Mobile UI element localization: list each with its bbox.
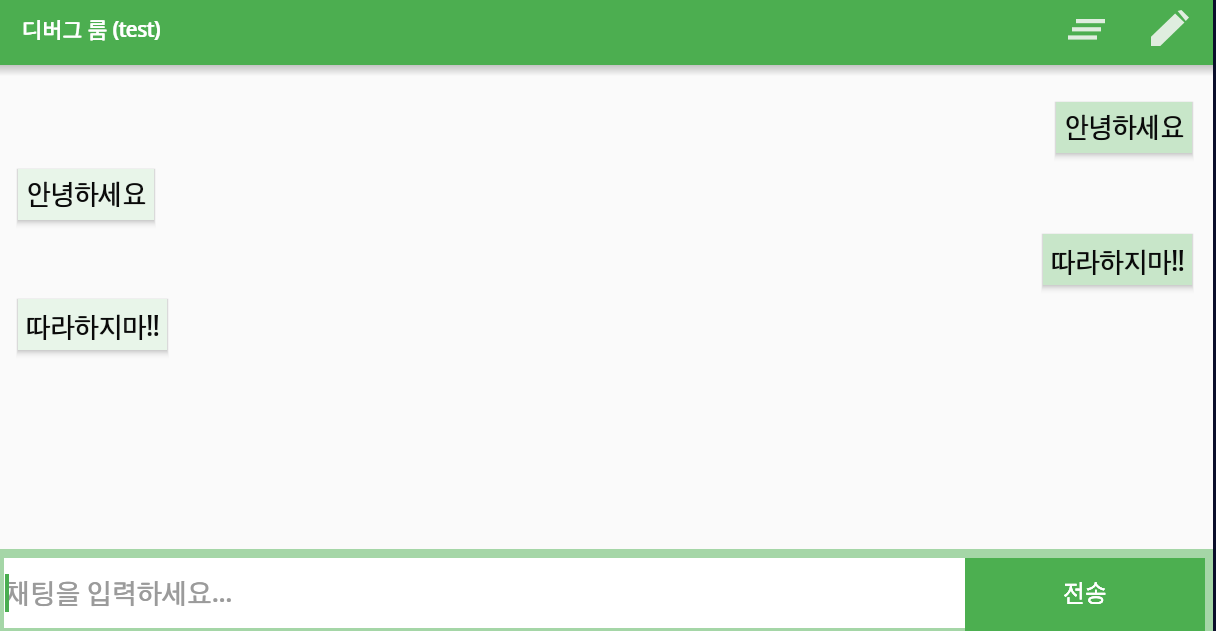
staticText: 채팅을 입력하세요... (6, 572, 233, 610)
button[interactable]: Sort messages (1046, 0, 1130, 65)
staticText: 전송 (1063, 577, 1107, 609)
staticText: 따라하지마!! (1051, 240, 1184, 279)
staticText: 디버그 룸 (test) (23, 13, 161, 44)
button[interactable]: 안녕하세요 (1056, 102, 1192, 153)
staticText: 따라하지마!! (1052, 240, 1185, 279)
button[interactable]: 전송 (965, 558, 1205, 631)
button[interactable]: 따라하지마!! (1043, 234, 1192, 285)
button[interactable]: 안녕하세요 (18, 169, 154, 220)
staticText: 따라하지마!! (27, 305, 160, 344)
staticText: 전송 (1063, 577, 1107, 609)
staticText: 따라하지마!! (26, 305, 159, 344)
button[interactable]: 채팅을 입력하세요... (4, 558, 965, 628)
button[interactable]: Edit (1130, 0, 1215, 65)
staticText: 안녕하세요 (1064, 109, 1184, 145)
staticText: 채팅을 입력하세요... (5, 572, 232, 610)
staticText: 안녕하세요 (27, 176, 147, 212)
staticText: 안녕하세요 (1065, 109, 1185, 145)
button[interactable]: 따라하지마!! (18, 299, 167, 350)
staticText: 디버그 룸 (test) (22, 13, 160, 44)
staticText: 안녕하세요 (26, 176, 146, 212)
